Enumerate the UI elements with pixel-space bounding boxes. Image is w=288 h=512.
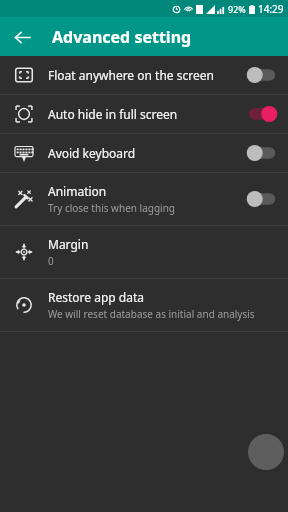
staticText: Float anywhere on the screen xyxy=(48,67,214,83)
button[interactable]: Auto hide in full screen xyxy=(0,95,288,133)
staticText: 14:29 xyxy=(258,2,284,16)
button[interactable]: Avoid keyboard xyxy=(0,134,288,172)
button[interactable]: Margin xyxy=(0,226,288,278)
staticText: Advanced setting xyxy=(52,26,192,48)
staticText: Animation xyxy=(48,183,107,199)
button[interactable]: Float anywhere on the screen xyxy=(0,56,288,94)
button[interactable]: Restore app data xyxy=(0,279,288,331)
staticText: Auto hide in full screen xyxy=(48,106,178,122)
staticText: 0 xyxy=(48,254,54,268)
button[interactable]: Back xyxy=(8,23,36,51)
button[interactable]: Add xyxy=(248,434,284,470)
staticText: Margin xyxy=(48,236,89,252)
staticText: 92% xyxy=(228,3,246,15)
staticText: We will reset database as initial and an… xyxy=(48,307,255,321)
staticText: Avoid keyboard xyxy=(48,145,136,161)
staticText: Try close this when lagging xyxy=(48,201,175,215)
staticText: Restore app data xyxy=(48,289,144,305)
button[interactable]: Animation xyxy=(0,173,288,225)
